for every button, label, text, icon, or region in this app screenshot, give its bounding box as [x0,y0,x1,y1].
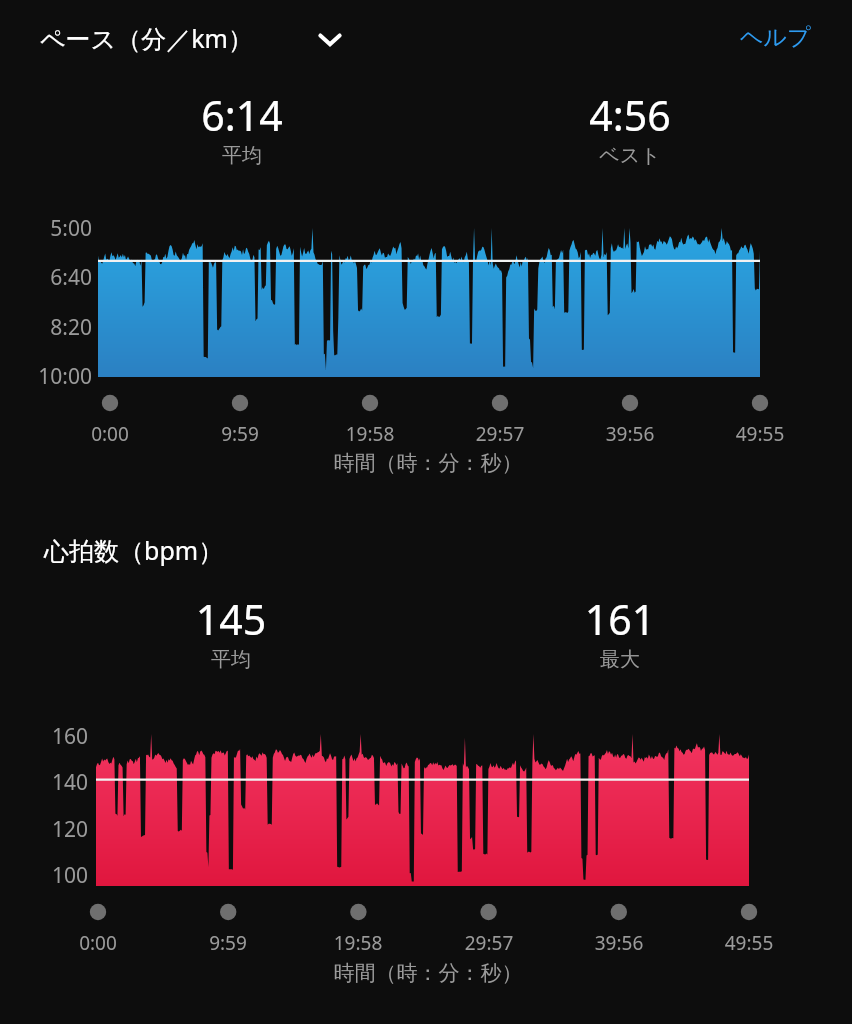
staticText: 平均 [21,647,441,672]
staticText: 時間（時：分：秒） [218,960,638,986]
staticText: 19:58 [148,930,568,956]
staticText: 心拍数（bpm） [44,533,224,567]
staticText: 29:57 [290,421,710,447]
staticText: 39:56 [409,930,829,956]
staticText: 145 [21,591,441,647]
staticText: 6:14 [32,87,452,143]
staticText: 100 [0,861,88,890]
staticText: 平均 [32,143,452,168]
staticText: 4:56 [420,87,840,143]
staticText: 9:59 [18,930,438,956]
staticText: 0:00 [0,930,308,956]
staticText: 49:55 [550,421,852,447]
staticText: 6:40 [0,263,92,292]
staticText: 49:55 [539,930,852,956]
staticText: ヘルプ [740,23,811,52]
staticText: 8:20 [0,313,92,342]
button[interactable]: Select metric [308,17,352,61]
staticText: 5:00 [0,214,92,243]
staticText: 最大 [410,647,830,672]
staticText: 161 [410,591,830,647]
staticText: 10:00 [0,362,92,391]
staticText: 140 [0,768,88,797]
staticText: 160 [0,722,88,751]
staticText: ベスト [420,143,840,168]
staticText: 29:57 [279,930,699,956]
button[interactable]: ヘルプ [732,17,819,58]
staticText: 19:58 [160,421,580,447]
staticText: ペース（分／km） [40,21,253,55]
staticText: 120 [0,815,88,844]
staticText: 9:59 [30,421,450,447]
staticText: 39:56 [420,421,840,447]
staticText: 0:00 [0,421,320,447]
staticText: 時間（時：分：秒） [218,450,638,476]
button[interactable]: ペース（分／km） [34,15,259,61]
